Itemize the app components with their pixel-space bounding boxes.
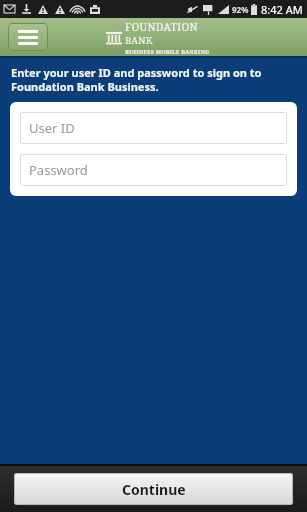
staticText: FOUNDATION: [125, 20, 198, 34]
staticText: BANK: [125, 34, 153, 47]
button[interactable]: Menu: [8, 23, 48, 51]
staticText: 8:42 AM: [261, 2, 303, 17]
staticText: Continue: [122, 480, 186, 499]
button[interactable]: Continue: [14, 473, 293, 505]
staticText: Enter your user ID and password to sign …: [11, 65, 293, 94]
staticText: BUSINESS MOBILE BANKING: [125, 48, 210, 55]
button[interactable]: Password: [20, 154, 287, 186]
button[interactable]: User ID: [20, 112, 287, 144]
staticText: User ID: [29, 119, 75, 137]
staticText: Password: [29, 161, 88, 179]
staticText: 92%: [232, 4, 249, 15]
